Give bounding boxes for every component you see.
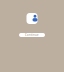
staticText: Continue <box>25 33 39 37</box>
button[interactable]: Continue <box>19 33 45 37</box>
